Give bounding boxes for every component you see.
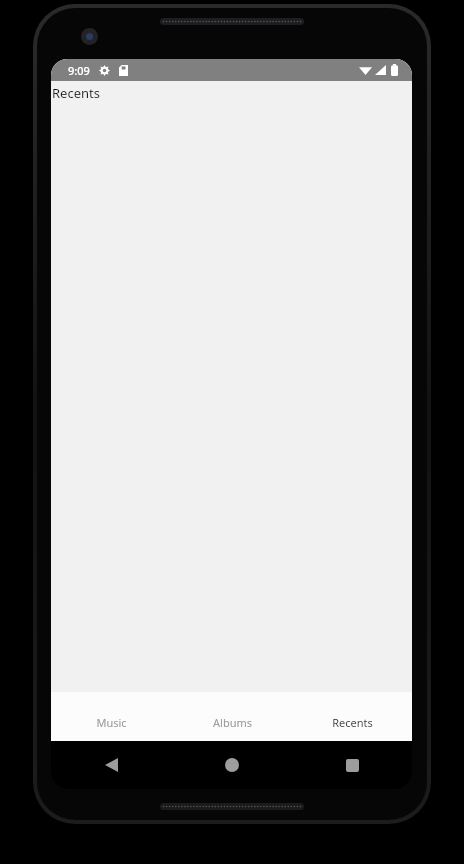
button[interactable]: Music	[51, 692, 172, 741]
button[interactable]: Home	[172, 741, 292, 789]
staticText: Albums	[213, 715, 252, 730]
staticText: 9:09	[68, 63, 90, 78]
button[interactable]: Recents	[292, 692, 412, 741]
staticText: Music	[96, 715, 127, 730]
button[interactable]: Back	[51, 741, 172, 789]
staticText: Recents	[52, 84, 100, 102]
staticText: Recents	[332, 715, 373, 730]
button[interactable]: Recent apps	[292, 741, 412, 789]
button[interactable]: Albums	[172, 692, 292, 741]
